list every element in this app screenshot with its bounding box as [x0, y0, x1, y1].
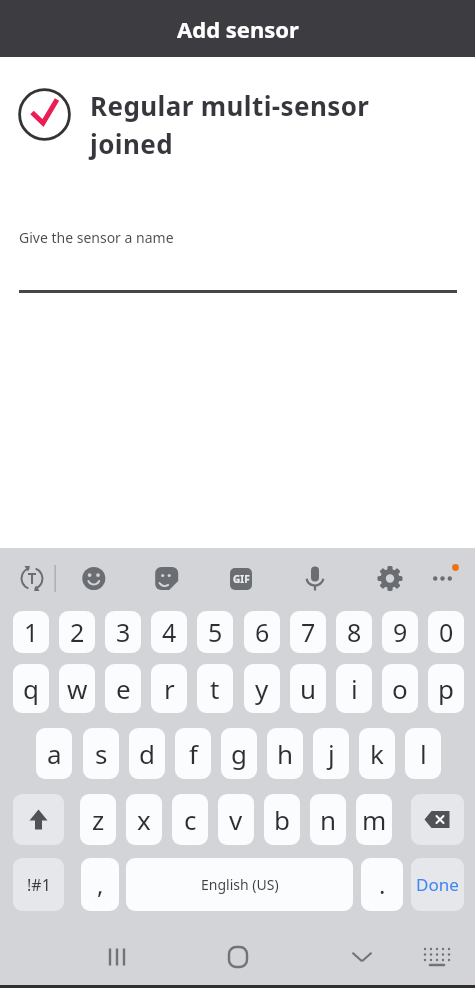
- button[interactable]: 3: [105, 611, 141, 653]
- staticText: b: [274, 802, 290, 837]
- button[interactable]: t: [197, 664, 233, 713]
- staticText: y: [255, 671, 269, 706]
- button[interactable]: w: [59, 664, 95, 713]
- staticText: w: [67, 671, 88, 706]
- staticText: a: [47, 736, 62, 771]
- staticText: k: [370, 736, 384, 771]
- button[interactable]: 5: [197, 611, 233, 653]
- button[interactable]: 0: [428, 611, 464, 653]
- staticText: c: [184, 802, 197, 837]
- staticText: English (US): [201, 875, 279, 894]
- staticText: 0: [439, 615, 454, 649]
- staticText: f: [189, 736, 198, 771]
- staticText: Done: [416, 873, 459, 896]
- staticText: 1: [24, 615, 39, 649]
- staticText: p: [438, 671, 454, 706]
- staticText: o: [392, 671, 408, 706]
- button[interactable]: h: [267, 728, 303, 779]
- button[interactable]: 6: [244, 611, 280, 653]
- staticText: 2: [70, 615, 85, 649]
- button[interactable]: 1: [13, 611, 49, 653]
- button[interactable]: n: [310, 794, 346, 845]
- button[interactable]: j: [313, 728, 349, 779]
- staticText: x: [137, 802, 151, 837]
- staticText: Regular multi-sensor joined: [90, 88, 370, 161]
- button[interactable]: q: [13, 664, 49, 713]
- button[interactable]: c: [172, 794, 208, 845]
- staticText: q: [23, 671, 39, 706]
- button[interactable]: k: [359, 728, 395, 779]
- staticText: e: [116, 671, 131, 706]
- button[interactable]: z: [80, 794, 116, 845]
- button[interactable]: r: [151, 664, 187, 713]
- button[interactable]: 9: [382, 611, 418, 653]
- staticText: 7: [301, 615, 316, 649]
- staticText: d: [139, 736, 155, 771]
- button[interactable]: l: [405, 728, 441, 779]
- staticText: l: [420, 736, 427, 771]
- button[interactable]: g: [221, 728, 257, 779]
- button[interactable]: [411, 794, 464, 845]
- button[interactable]: 2: [59, 611, 95, 653]
- button[interactable]: v: [218, 794, 254, 845]
- staticText: 5: [208, 615, 223, 649]
- staticText: 6: [255, 615, 270, 649]
- staticText: ,: [97, 868, 104, 901]
- staticText: GIF: [233, 572, 250, 586]
- staticText: 9: [393, 615, 408, 649]
- staticText: g: [231, 736, 247, 771]
- button[interactable]: e: [105, 664, 141, 713]
- button[interactable]: .: [361, 858, 403, 911]
- button[interactable]: 7: [290, 611, 326, 653]
- button[interactable]: b: [264, 794, 300, 845]
- staticText: 3: [116, 615, 131, 649]
- button[interactable]: y: [244, 664, 280, 713]
- staticText: t: [210, 671, 220, 706]
- staticText: Add sensor: [177, 14, 299, 44]
- staticText: 8: [347, 615, 362, 649]
- staticText: .: [379, 868, 386, 901]
- staticText: j: [328, 736, 335, 771]
- button[interactable]: i: [336, 664, 372, 713]
- button[interactable]: a: [36, 728, 72, 779]
- button[interactable]: 4: [151, 611, 187, 653]
- button[interactable]: p: [428, 664, 464, 713]
- button[interactable]: ,: [81, 858, 119, 911]
- staticText: i: [351, 671, 358, 706]
- staticText: 4: [162, 615, 177, 649]
- button[interactable]: f: [175, 728, 211, 779]
- staticText: n: [320, 802, 337, 837]
- staticText: z: [92, 802, 105, 837]
- button[interactable]: GIF: [230, 568, 252, 590]
- button[interactable]: o: [382, 664, 418, 713]
- button[interactable]: English (US): [126, 858, 353, 911]
- button[interactable]: x: [126, 794, 162, 845]
- button[interactable]: 8: [336, 611, 372, 653]
- button[interactable]: !#1: [13, 858, 64, 911]
- staticText: r: [164, 671, 175, 706]
- staticText: h: [277, 736, 294, 771]
- button[interactable]: [13, 794, 64, 845]
- button[interactable]: u: [290, 664, 326, 713]
- button[interactable]: d: [129, 728, 165, 779]
- staticText: u: [300, 671, 317, 706]
- button[interactable]: s: [83, 728, 119, 779]
- staticText: m: [362, 802, 387, 837]
- button[interactable]: m: [356, 794, 392, 845]
- staticText: v: [229, 802, 243, 837]
- staticText: s: [95, 736, 108, 771]
- staticText: Give the sensor a name: [19, 228, 174, 247]
- staticText: !#1: [27, 874, 51, 896]
- button[interactable]: Done: [411, 858, 464, 911]
